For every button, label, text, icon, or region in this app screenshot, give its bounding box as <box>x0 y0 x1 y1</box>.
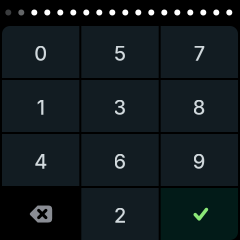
button[interactable]: Delete <box>2 188 79 240</box>
button[interactable]: 5 <box>81 26 159 78</box>
button[interactable]: 1 <box>2 80 79 132</box>
button[interactable]: 3 <box>81 80 159 132</box>
button[interactable]: 4 <box>2 134 79 186</box>
staticText: 3 <box>113 95 126 120</box>
staticText: 6 <box>113 149 126 174</box>
staticText: 1 <box>37 95 45 120</box>
button[interactable]: 6 <box>81 134 159 186</box>
staticText: 7 <box>194 41 205 66</box>
button[interactable]: Confirm <box>161 188 238 240</box>
staticText: 8 <box>193 95 206 120</box>
button[interactable]: 9 <box>161 134 238 186</box>
staticText: 2 <box>114 203 126 228</box>
button[interactable]: 2 <box>81 188 159 240</box>
staticText: 5 <box>114 41 126 66</box>
staticText: 9 <box>193 149 206 174</box>
staticText: 4 <box>34 149 47 174</box>
button[interactable]: 8 <box>161 80 238 132</box>
button[interactable]: 7 <box>161 26 238 78</box>
staticText: 0 <box>34 41 47 66</box>
button[interactable]: 0 <box>2 26 79 78</box>
